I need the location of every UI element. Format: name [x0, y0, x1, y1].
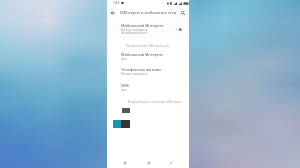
staticText: Мобильный Интернет [121, 52, 164, 57]
staticText: Предпочтения SIM-карты для [126, 44, 170, 48]
staticText: Телефонные вызовы [121, 67, 161, 72]
button[interactable] [107, 65, 189, 78]
staticText: авто [121, 57, 128, 61]
staticText: 7:43 [113, 1, 120, 5]
button[interactable] [107, 50, 189, 63]
button[interactable]: Toggle mobile internet [176, 28, 182, 31]
button[interactable]: SIM card 1 [122, 108, 130, 113]
staticText: Информация и настройки SIM-карты [128, 100, 182, 104]
button[interactable]: Back [167, 159, 175, 167]
button[interactable]: Home [145, 159, 153, 167]
button[interactable]: SIM-карты и мобильные сети [120, 9, 180, 16]
staticText: SIM-карты и мобильные сети [120, 10, 177, 15]
staticText: Мобильный Интернет [121, 23, 164, 28]
button[interactable]: Back [108, 8, 118, 18]
staticText: SMS [121, 83, 129, 88]
staticText: Доступ к интернету на мобильной сети [121, 28, 151, 35]
button[interactable] [112, 19, 185, 39]
button[interactable]: Recents [121, 159, 129, 167]
staticText: авто [121, 88, 128, 92]
button[interactable]: SIM card 2 [113, 120, 130, 128]
staticText: Всегда спрашивать [121, 72, 148, 76]
button[interactable] [107, 81, 189, 94]
button[interactable]: Search [178, 8, 188, 18]
